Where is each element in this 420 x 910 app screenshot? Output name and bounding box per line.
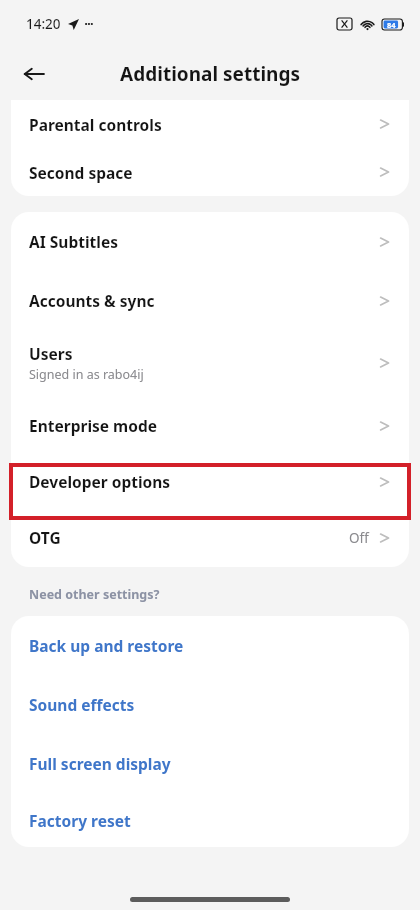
staticText: Need other settings? [29,586,160,603]
button[interactable]: Back up and restore [11,616,409,675]
staticText: Parental controls [29,114,162,135]
staticText: Off [349,529,369,547]
staticText: Back up and restore [29,635,184,656]
staticText: Accounts & sync [29,290,155,311]
staticText: AI Subtitles [29,231,118,252]
staticText: Additional settings [120,61,300,87]
staticText: Enterprise mode [29,415,157,436]
button[interactable]: Accounts & sync [11,271,409,330]
button[interactable]: Sound effects [11,675,409,734]
staticText: Signed in as rabo4ij [29,366,144,383]
staticText: Developer options [29,471,171,492]
staticText: Users [29,343,73,364]
button[interactable]: Full screen display [11,734,409,793]
button[interactable]: Users [11,330,409,396]
button[interactable]: OTG [11,508,409,567]
button[interactable]: Developer options [11,455,409,508]
staticText: 14:20 [26,15,61,33]
staticText: Sound effects [29,694,135,715]
button[interactable]: Back [12,52,56,96]
staticText: 84 [387,20,396,30]
staticText: OTG [29,527,61,548]
staticText: Full screen display [29,753,171,774]
staticText: Second space [29,162,133,183]
button[interactable]: Parental controls [11,100,409,148]
staticText: Factory reset [29,810,131,831]
button[interactable]: Enterprise mode [11,396,409,455]
button[interactable]: AI Subtitles [11,212,409,271]
button[interactable]: Second space [11,148,409,196]
button[interactable]: Factory reset [11,793,409,847]
